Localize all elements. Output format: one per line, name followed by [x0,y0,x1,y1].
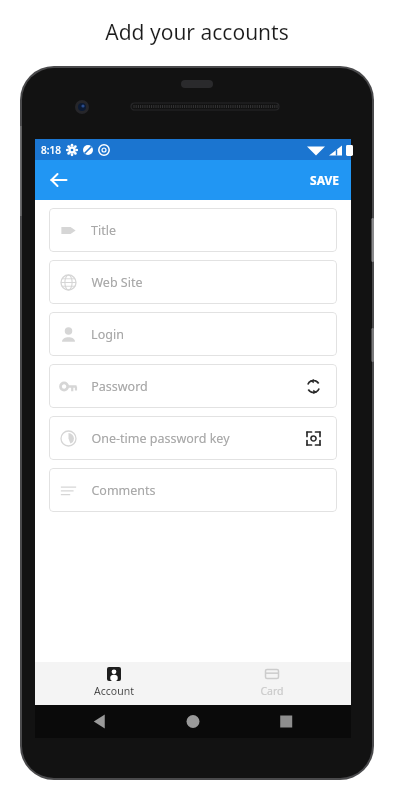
button[interactable]: Password [49,364,337,408]
button[interactable]: Title [49,208,337,252]
staticText: Password [91,378,148,395]
button[interactable]: Card [193,662,351,705]
button[interactable]: Login [49,312,337,356]
button[interactable]: Generate password [300,373,326,399]
button[interactable]: Scan QR code [300,425,326,451]
staticText: Card [260,684,284,698]
staticText: Comments [91,482,156,499]
button[interactable]: SAVE [298,164,351,196]
staticText: Account [94,684,134,698]
staticText: SAVE [310,172,339,188]
staticText: Web Site [91,274,143,291]
button[interactable]: One-time password key [49,416,337,460]
button[interactable]: Comments [49,468,337,512]
button[interactable]: Account [35,662,193,705]
staticText: Add your accounts [105,18,289,47]
staticText: One-time password key [91,430,230,447]
staticText: 8:18 [41,143,61,157]
button[interactable]: Back [43,164,75,196]
staticText: Login [91,326,124,343]
button[interactable]: Web Site [49,260,337,304]
staticText: Title [91,222,116,239]
